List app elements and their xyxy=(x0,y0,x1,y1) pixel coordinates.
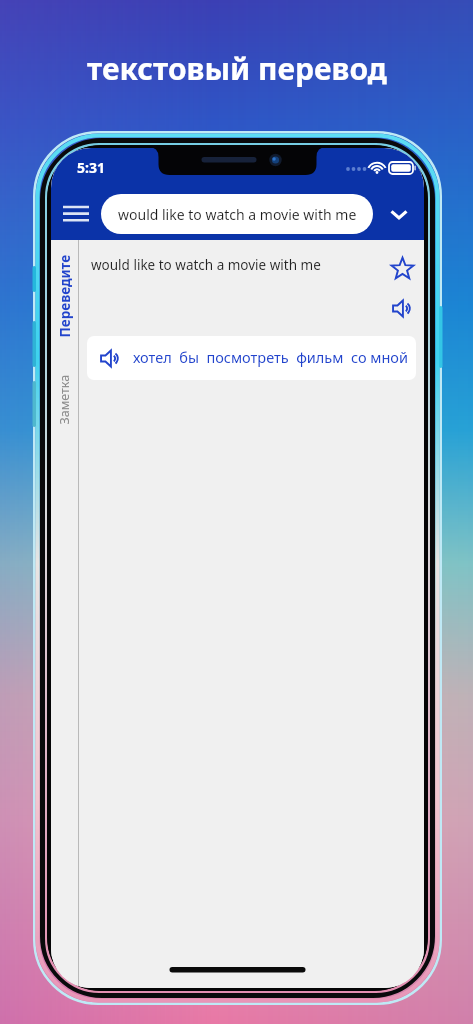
staticText: 5:31 xyxy=(77,158,105,177)
staticText: would like to watch a movie with me xyxy=(91,256,374,274)
staticText: Переведите xyxy=(55,254,73,337)
button[interactable]: Заметка xyxy=(51,360,78,440)
button[interactable]: хотел бы посмотреть фильм со мной xyxy=(87,336,416,380)
staticText: would like to watch a movie with me xyxy=(118,205,357,224)
staticText: текстовый перевод xyxy=(87,48,387,89)
button[interactable]: Favorite xyxy=(384,250,420,286)
button[interactable]: Menu xyxy=(51,188,101,240)
button[interactable]: Expand xyxy=(373,188,424,240)
staticText: Заметка xyxy=(55,374,72,424)
staticText: хотел бы посмотреть фильм со мной xyxy=(133,347,408,367)
button[interactable]: Listen to source text xyxy=(384,290,420,326)
button[interactable]: Переведите xyxy=(51,244,78,348)
button[interactable]: would like to watch a movie with me xyxy=(101,194,373,234)
